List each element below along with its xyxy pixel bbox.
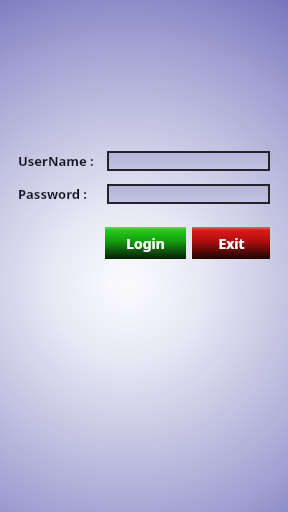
staticText: Exit [218, 234, 245, 253]
button[interactable] [107, 184, 270, 204]
button[interactable]: Login [105, 227, 186, 259]
button[interactable]: Exit [192, 227, 270, 259]
staticText: Login [126, 234, 165, 253]
button[interactable] [107, 151, 270, 171]
staticText: UserName : [18, 152, 94, 170]
staticText: Password : [18, 185, 87, 203]
